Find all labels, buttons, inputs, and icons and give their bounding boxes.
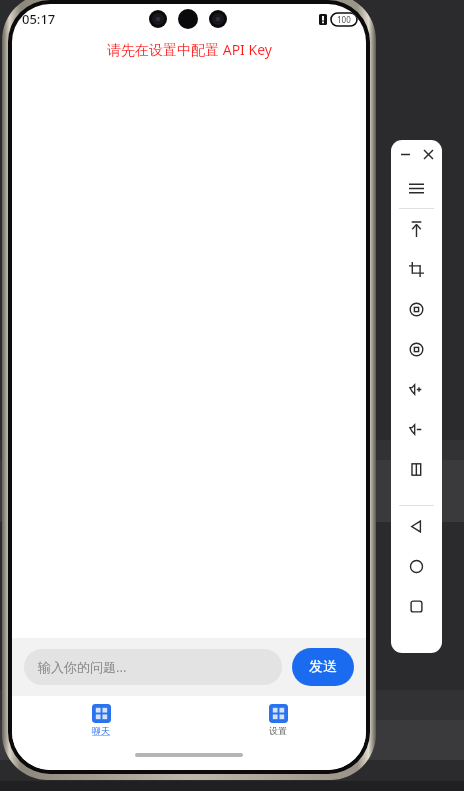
- button[interactable]: 聊天: [71, 702, 131, 738]
- staticText: 输入你的问题...: [38, 658, 127, 676]
- button[interactable]: Home: [391, 546, 442, 586]
- button[interactable]: Crop / screenshot: [391, 249, 442, 289]
- button[interactable]: Fold / flex: [391, 449, 442, 489]
- staticText: 聊天: [92, 725, 110, 736]
- button[interactable]: Minimise: [397, 146, 413, 162]
- button[interactable]: Rotate left: [391, 289, 442, 329]
- button[interactable]: 输入你的问题...: [24, 649, 282, 685]
- staticText: 发送: [309, 658, 337, 676]
- button[interactable]: Volume down: [391, 409, 442, 449]
- button[interactable]: Volume up: [391, 369, 442, 409]
- staticText: 05:17: [22, 10, 56, 28]
- button[interactable]: Menu: [391, 168, 442, 208]
- button[interactable]: Power: [391, 209, 442, 249]
- button[interactable]: 设置: [248, 702, 308, 738]
- button[interactable]: Close: [420, 146, 436, 162]
- staticText: 请先在设置中配置 API Key: [107, 40, 272, 59]
- button[interactable]: Back: [391, 506, 442, 546]
- staticText: 100: [337, 14, 351, 25]
- button[interactable]: 发送: [292, 648, 354, 686]
- button[interactable]: Overview: [391, 586, 442, 626]
- button[interactable]: Rotate right: [391, 329, 442, 369]
- staticText: 设置: [269, 725, 287, 736]
